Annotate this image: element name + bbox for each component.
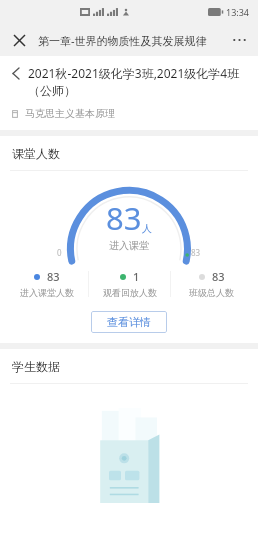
staticText: 第一章-世界的物质性及其发展规律 bbox=[38, 33, 226, 48]
staticText: 观看回放人数 bbox=[103, 287, 157, 298]
staticText: 13:34 bbox=[226, 6, 250, 18]
button[interactable]: 83 bbox=[171, 267, 252, 300]
staticText: 83 bbox=[47, 269, 60, 284]
staticText: 进入课堂 bbox=[109, 239, 149, 252]
button[interactable]: 1 bbox=[89, 267, 170, 300]
staticText: 进入课堂人数 bbox=[20, 287, 74, 298]
button[interactable]: Back bbox=[8, 65, 24, 81]
staticText: 学生数据 bbox=[12, 359, 60, 374]
staticText: 2021秋-2021级化学3班,2021级化学4班（公师） bbox=[28, 65, 246, 98]
button[interactable]: 83 bbox=[6, 267, 88, 300]
staticText: 83 bbox=[212, 269, 225, 284]
staticText: 83 bbox=[191, 247, 201, 258]
staticText: 人 bbox=[142, 222, 152, 235]
staticText: 1 bbox=[133, 269, 140, 284]
staticText: 课堂人数 bbox=[12, 146, 60, 161]
button[interactable]: Close bbox=[6, 27, 32, 53]
staticText: 83 bbox=[106, 197, 142, 239]
button[interactable]: More options bbox=[226, 27, 252, 53]
staticText: 班级总人数 bbox=[189, 287, 234, 298]
button[interactable]: 查看详情 bbox=[91, 311, 167, 333]
staticText: 马克思主义基本原理 bbox=[25, 107, 115, 120]
staticText: 0 bbox=[57, 247, 62, 258]
staticText: 查看详情 bbox=[107, 315, 151, 329]
